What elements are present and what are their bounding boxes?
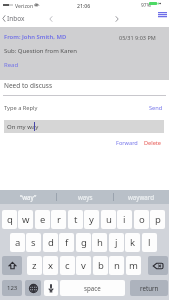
- staticText: ways: [78, 193, 93, 201]
- staticText: p: [155, 213, 161, 226]
- staticText: y: [89, 213, 94, 226]
- staticText: “way”: [20, 193, 37, 201]
- button[interactable]: m: [126, 256, 141, 275]
- staticText: f: [65, 236, 69, 249]
- button[interactable]: return: [130, 280, 168, 296]
- staticText: return: [140, 284, 159, 292]
- button[interactable]: r: [51, 210, 66, 229]
- staticText: x: [48, 259, 54, 272]
- button[interactable]: t: [68, 210, 83, 229]
- button[interactable]: w: [18, 210, 33, 229]
- button[interactable]: p: [150, 210, 165, 229]
- staticText: v: [81, 259, 86, 272]
- staticText: Verizon: [15, 2, 34, 9]
- staticText: space: [84, 284, 101, 292]
- staticText: wayward: [128, 193, 155, 201]
- staticText: e: [40, 213, 46, 226]
- staticText: 97%: [141, 2, 151, 9]
- button[interactable]: q: [2, 210, 17, 229]
- staticText: g: [81, 236, 87, 249]
- staticText: Forward: [116, 139, 138, 147]
- button[interactable]: Delete: [144, 139, 162, 147]
- button[interactable]: Inbox: [2, 10, 25, 27]
- button[interactable]: 123: [2, 280, 22, 296]
- button[interactable]: b: [93, 256, 108, 275]
- button[interactable]: Shift: [2, 256, 22, 275]
- button[interactable]: Forward: [116, 139, 138, 147]
- button[interactable]: u: [101, 210, 116, 229]
- staticText: c: [65, 259, 70, 272]
- button[interactable]: e: [35, 210, 50, 229]
- staticText: Type a Reply: [4, 104, 38, 112]
- staticText: o: [139, 213, 145, 226]
- staticText: Sub: Question from Karen: [4, 47, 77, 55]
- button[interactable]: o: [134, 210, 149, 229]
- button[interactable]: f: [59, 233, 74, 252]
- staticText: Delete: [144, 139, 162, 147]
- button[interactable]: Send: [149, 104, 163, 112]
- button[interactable]: x: [43, 256, 58, 275]
- button[interactable]: y: [84, 210, 99, 229]
- button[interactable]: Dictate: [44, 280, 58, 296]
- staticText: w: [22, 213, 30, 226]
- button[interactable]: k: [125, 233, 140, 252]
- staticText: h: [97, 236, 103, 249]
- staticText: 123: [7, 284, 18, 292]
- staticText: q: [7, 213, 13, 226]
- staticText: r: [57, 213, 61, 226]
- staticText: i: [123, 213, 126, 226]
- staticText: l: [148, 236, 151, 249]
- button[interactable]: g: [76, 233, 91, 252]
- button[interactable]: Previous: [46, 10, 56, 27]
- staticText: b: [98, 259, 104, 272]
- staticText: k: [130, 236, 136, 249]
- staticText: t: [74, 213, 78, 226]
- button[interactable]: ways: [57, 190, 113, 204]
- button[interactable]: h: [92, 233, 107, 252]
- button[interactable]: c: [60, 256, 75, 275]
- staticText: a: [15, 236, 21, 249]
- staticText: n: [114, 259, 120, 272]
- button[interactable]: z: [27, 256, 42, 275]
- button[interactable]: j: [109, 233, 124, 252]
- button[interactable]: d: [43, 233, 58, 252]
- staticText: Inbox: [7, 14, 25, 23]
- staticText: j: [115, 236, 118, 249]
- staticText: On my way: [7, 123, 39, 131]
- button[interactable]: a: [10, 233, 25, 252]
- staticText: s: [31, 236, 36, 249]
- button[interactable]: Next: [112, 10, 122, 27]
- button[interactable]: “way”: [0, 190, 56, 204]
- button[interactable]: l: [142, 233, 157, 252]
- button[interactable]: space: [60, 280, 125, 296]
- staticText: Send: [149, 104, 163, 112]
- staticText: 05/31 9:03 PM: [119, 34, 156, 41]
- button[interactable]: wayward: [113, 190, 169, 204]
- button[interactable]: Menu: [151, 10, 169, 22]
- staticText: z: [32, 259, 37, 272]
- staticText: Read: [4, 61, 19, 69]
- staticText: m: [129, 259, 138, 272]
- button[interactable]: s: [26, 233, 41, 252]
- staticText: Need to discuss: [4, 81, 53, 90]
- staticText: 21:06: [77, 2, 91, 9]
- button[interactable]: v: [76, 256, 91, 275]
- button[interactable]: Backspace: [148, 256, 168, 275]
- button[interactable]: n: [109, 256, 124, 275]
- staticText: d: [48, 236, 54, 249]
- button[interactable]: Change keyboard: [25, 280, 41, 296]
- staticText: From: John Smith, MD: [4, 33, 67, 41]
- staticText: u: [106, 213, 112, 226]
- button[interactable]: i: [117, 210, 132, 229]
